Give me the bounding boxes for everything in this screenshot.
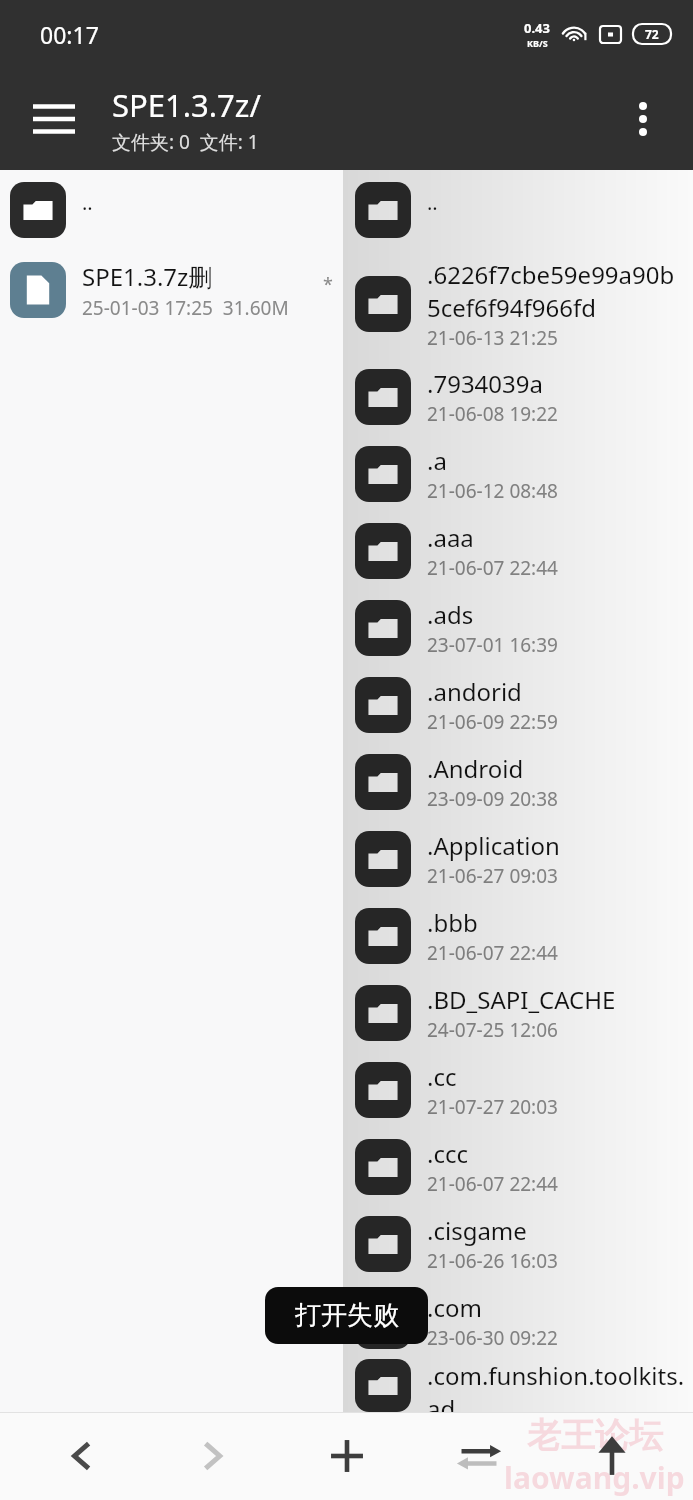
staticText: .6226f7cbe59e99a90b5cef6f94f966fd bbox=[427, 258, 687, 324]
staticText: 21-06-27 09:03 bbox=[427, 863, 558, 889]
staticText: SPE1.3.7z删 bbox=[82, 260, 213, 293]
button[interactable]: Forward bbox=[162, 1412, 266, 1500]
staticText: .andorid bbox=[427, 675, 522, 708]
staticText: 21-06-08 19:22 bbox=[427, 401, 558, 427]
staticText: .Android bbox=[427, 752, 524, 785]
staticText: .ads bbox=[427, 598, 474, 631]
staticText: .aaa bbox=[427, 521, 474, 554]
staticText: 24-07-25 12:06 bbox=[427, 1017, 558, 1043]
button[interactable]: .BD_SAPI_CACHE bbox=[343, 974, 693, 1051]
button[interactable]: Up bbox=[560, 1412, 664, 1500]
staticText: 72 bbox=[645, 26, 659, 42]
staticText: .com bbox=[427, 1291, 482, 1324]
button[interactable]: .Android bbox=[343, 743, 693, 820]
staticText: 文件夹: 0 文件: 1 bbox=[112, 129, 259, 155]
staticText: 23-07-01 16:39 bbox=[427, 632, 558, 658]
button[interactable]: .ccc bbox=[343, 1128, 693, 1205]
button[interactable]: .bbb bbox=[343, 897, 693, 974]
staticText: 25-01-03 17:25 31.60M bbox=[82, 295, 289, 321]
button[interactable]: .7934039a bbox=[343, 358, 693, 435]
button[interactable]: .6226f7cbe59e99a90b5cef6f94f966fd bbox=[343, 250, 693, 358]
staticText: 21-07-27 20:03 bbox=[427, 1094, 558, 1120]
button[interactable]: Menu bbox=[26, 91, 82, 147]
staticText: 老王论坛 bbox=[527, 1414, 663, 1457]
button[interactable]: .cc bbox=[343, 1051, 693, 1128]
staticText: * bbox=[323, 272, 333, 297]
staticText: 23-09-09 20:38 bbox=[427, 786, 558, 812]
staticText: .7934039a bbox=[427, 367, 543, 400]
button[interactable]: .com.funshion.toolkits.ad bbox=[343, 1359, 693, 1412]
staticText: 21-06-09 22:59 bbox=[427, 709, 558, 735]
button[interactable]: SPE1.3.7z删 bbox=[0, 250, 343, 330]
button[interactable]: .aaa bbox=[343, 512, 693, 589]
staticText: .bbb bbox=[427, 906, 478, 939]
button[interactable]: .cisgame bbox=[343, 1205, 693, 1282]
staticText: .. bbox=[427, 189, 438, 216]
staticText: SPE1.3.7z/ bbox=[112, 84, 261, 126]
staticText: .ccc bbox=[427, 1137, 468, 1170]
staticText: .. bbox=[82, 189, 93, 216]
button[interactable]: .ads bbox=[343, 589, 693, 666]
staticText: 21-06-07 22:44 bbox=[427, 940, 558, 966]
staticText: 21-06-26 16:03 bbox=[427, 1248, 558, 1274]
button[interactable]: .com bbox=[343, 1282, 693, 1359]
staticText: .BD_SAPI_CACHE bbox=[427, 983, 616, 1016]
button[interactable]: .. bbox=[343, 170, 693, 250]
staticText: 21-06-13 21:25 bbox=[427, 325, 558, 351]
staticText: 00:17 bbox=[40, 19, 99, 50]
staticText: 0.43 bbox=[524, 19, 550, 37]
button[interactable]: More options bbox=[615, 91, 671, 147]
button[interactable]: .. bbox=[0, 170, 343, 250]
staticText: 21-06-07 22:44 bbox=[427, 555, 558, 581]
button[interactable]: .Application bbox=[343, 820, 693, 897]
staticText: .Application bbox=[427, 829, 560, 862]
button[interactable]: .andorid bbox=[343, 666, 693, 743]
button[interactable]: Add bbox=[295, 1412, 399, 1500]
button[interactable]: .a bbox=[343, 435, 693, 512]
staticText: 打开失败 bbox=[295, 1299, 399, 1332]
staticText: .com.funshion.toolkits.ad bbox=[427, 1359, 687, 1412]
staticText: 21-06-07 22:44 bbox=[427, 1171, 558, 1197]
staticText: .cc bbox=[427, 1060, 457, 1093]
staticText: laowang.vip bbox=[504, 1457, 685, 1498]
button[interactable]: Transfer bbox=[427, 1412, 531, 1500]
staticText: .a bbox=[427, 444, 447, 477]
staticText: 21-06-12 08:48 bbox=[427, 478, 558, 504]
staticText: KB/S bbox=[527, 37, 548, 49]
button[interactable]: Back bbox=[29, 1412, 133, 1500]
staticText: 23-06-30 09:22 bbox=[427, 1325, 558, 1351]
staticText: .cisgame bbox=[427, 1214, 527, 1247]
